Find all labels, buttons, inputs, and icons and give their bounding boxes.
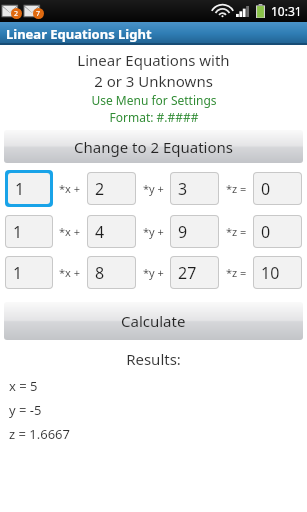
button[interactable]: 0 [254,173,301,204]
staticText: x = 5 [9,377,38,395]
staticText: *x + [59,224,81,239]
staticText: 2 [14,9,19,19]
button[interactable]: 10 [254,257,301,288]
button[interactable]: 1 [8,173,50,204]
staticText: *y + [143,265,164,280]
staticText: 8 [95,262,105,284]
staticText: 0 [261,221,271,243]
staticText: 7 [36,9,41,19]
staticText: Calculate [121,311,186,331]
staticText: *x + [59,265,81,280]
button[interactable]: 3 [171,173,218,204]
staticText: 2 or 3 Unknowns [94,71,213,91]
button[interactable]: 1 [6,257,52,288]
staticText: y = -5 [9,401,42,419]
staticText: Change to 2 Equations [74,137,233,157]
staticText: z = 1.6667 [9,425,70,443]
staticText: *z = [226,265,247,280]
button[interactable]: 9 [171,216,218,247]
staticText: *z = [226,224,247,239]
staticText: 9 [178,221,188,243]
staticText: *y + [143,224,164,239]
staticText: *y + [143,181,164,196]
staticText: 10:31 [271,3,302,19]
button[interactable]: Calculate [4,302,303,340]
button[interactable]: 4 [88,216,135,247]
staticText: 1 [13,262,23,284]
button[interactable]: 1 [6,216,52,247]
button[interactable]: 27 [171,257,218,288]
staticText: 1 [15,178,25,200]
staticText: 2 [95,178,105,200]
staticText: 4 [95,221,105,243]
staticText: 1 [13,221,23,243]
staticText: Format: #.#### [109,109,199,125]
staticText: *x + [59,181,81,196]
button[interactable]: Change to 2 Equations [4,130,303,163]
staticText: 27 [178,262,197,284]
staticText: Results: [0,349,307,369]
staticText: 10 [261,262,280,284]
button[interactable]: 0 [254,216,301,247]
staticText: Use Menu for Settings [91,92,217,108]
staticText: 0 [261,178,271,200]
staticText: 3 [178,178,188,200]
staticText: Linear Equations Light [6,25,152,43]
staticText: *z = [226,181,247,196]
button[interactable]: 2 [88,173,135,204]
staticText: Linear Equations with [77,50,230,70]
button[interactable]: 8 [88,257,135,288]
